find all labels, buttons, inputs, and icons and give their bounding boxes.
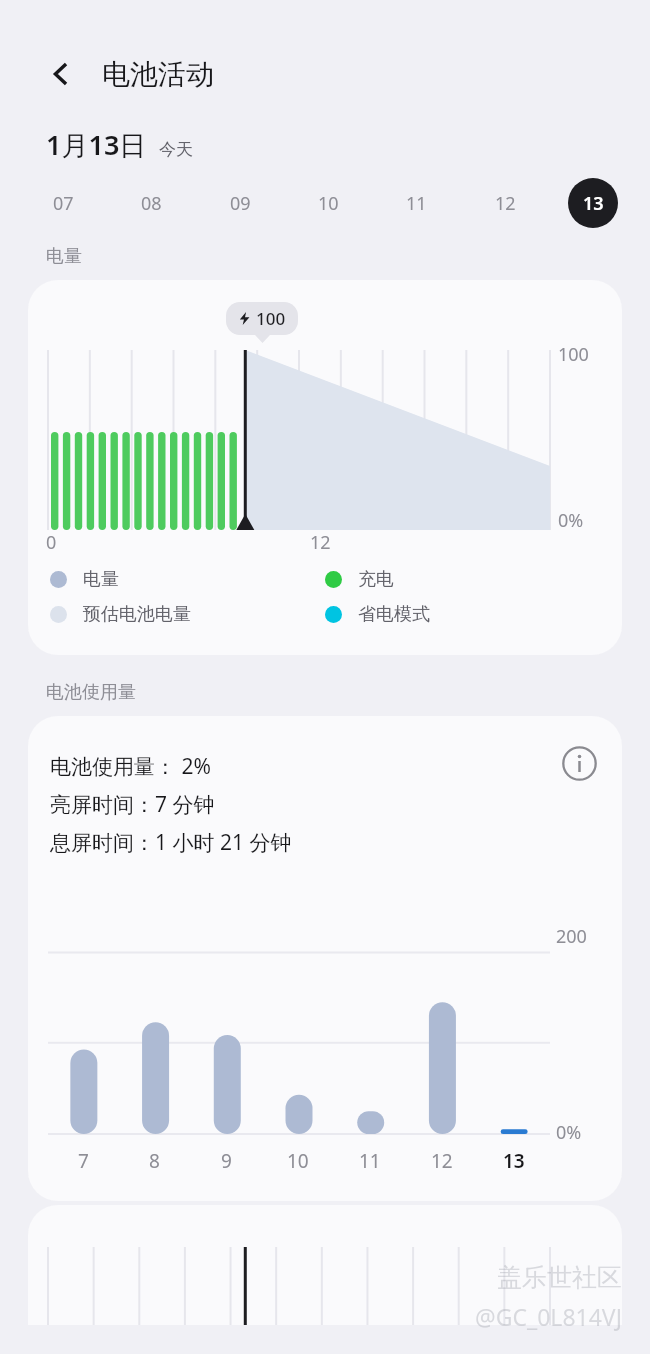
button[interactable]: 13 bbox=[568, 178, 618, 228]
button[interactable] bbox=[28, 1205, 622, 1325]
staticText: 电池使用量 bbox=[46, 681, 136, 704]
staticText: @GC_0L814VJ bbox=[475, 1301, 622, 1332]
staticText: 息屏时间：1 小时 21 分钟 bbox=[50, 828, 292, 857]
staticText: 0 bbox=[46, 530, 57, 555]
staticText: 8 bbox=[149, 1148, 160, 1174]
staticText: 08 bbox=[141, 191, 162, 216]
button[interactable]: 电池使用量： 2% bbox=[28, 716, 622, 1201]
staticText: 电池活动 bbox=[102, 57, 214, 92]
staticText: 100 bbox=[256, 307, 286, 330]
button[interactable]: 08 bbox=[126, 178, 176, 228]
staticText: 13 bbox=[503, 1148, 525, 1174]
staticText: 1月13日 bbox=[46, 126, 147, 163]
staticText: 13 bbox=[583, 191, 604, 216]
button[interactable]: 100 bbox=[28, 280, 622, 655]
staticText: 100 bbox=[558, 342, 589, 367]
button[interactable]: 12 bbox=[480, 178, 530, 228]
staticText: 亮屏时间：7 分钟 bbox=[50, 790, 215, 819]
staticText: 12 bbox=[310, 530, 331, 555]
button[interactable]: 预估电池电量 bbox=[50, 603, 325, 626]
staticText: 充电 bbox=[358, 568, 394, 591]
button[interactable]: 充电 bbox=[325, 568, 600, 591]
button[interactable]: 07 bbox=[38, 178, 88, 228]
staticText: 预估电池电量 bbox=[83, 603, 191, 626]
button[interactable]: Info bbox=[556, 740, 602, 786]
button[interactable]: 省电模式 bbox=[325, 603, 600, 626]
staticText: 今天 bbox=[159, 139, 193, 160]
staticText: 10 bbox=[318, 191, 339, 216]
staticText: 电池使用量： 2% bbox=[50, 752, 211, 781]
staticText: 7 bbox=[78, 1148, 89, 1174]
staticText: 11 bbox=[359, 1148, 381, 1174]
button[interactable]: 11 bbox=[391, 178, 441, 228]
staticText: 电量 bbox=[46, 245, 82, 268]
staticText: 11 bbox=[406, 191, 427, 216]
staticText: 0% bbox=[556, 1120, 582, 1145]
button[interactable]: 09 bbox=[215, 178, 265, 228]
staticText: 07 bbox=[53, 191, 74, 216]
button[interactable]: 电量 bbox=[50, 568, 325, 591]
staticText: 10 bbox=[287, 1148, 309, 1174]
button[interactable]: 10 bbox=[303, 178, 353, 228]
staticText: 12 bbox=[495, 191, 516, 216]
staticText: 09 bbox=[230, 191, 251, 216]
staticText: 9 bbox=[221, 1148, 232, 1174]
staticText: 12 bbox=[431, 1148, 453, 1174]
staticText: 电量 bbox=[83, 568, 119, 591]
staticText: 省电模式 bbox=[358, 603, 430, 626]
staticText: 盖乐世社区 bbox=[497, 1262, 622, 1293]
staticText: 0% bbox=[558, 508, 584, 533]
button[interactable]: Back bbox=[38, 51, 84, 97]
staticText: 200 bbox=[556, 924, 587, 949]
